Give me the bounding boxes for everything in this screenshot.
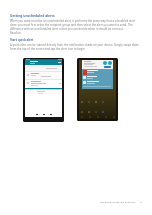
button[interactable] xyxy=(79,60,116,119)
staticText: When you want to utilise an unscheduled … xyxy=(10,19,141,35)
button[interactable] xyxy=(25,59,62,117)
staticText: Start quick alert xyxy=(10,38,34,42)
staticText: Getting unscheduled alerts xyxy=(10,13,55,17)
staticText: A quick alert can be started directly fr… xyxy=(10,43,141,51)
staticText: Ten good chords are all plastic 17 xyxy=(100,200,143,203)
